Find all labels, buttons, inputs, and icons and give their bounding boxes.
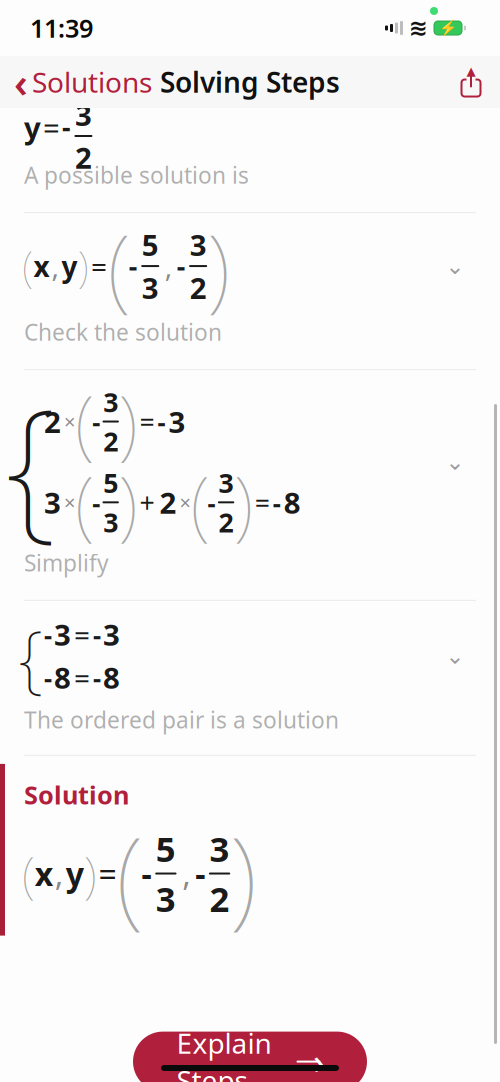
staticText: Explain Steps xyxy=(176,1024,271,1082)
staticText: x xyxy=(35,852,53,895)
staticText: 3 xyxy=(219,465,234,500)
staticText: 11:39 xyxy=(30,11,93,45)
staticText: ) xyxy=(207,206,230,326)
staticText: , xyxy=(55,852,64,895)
staticText: 3 xyxy=(190,225,207,264)
button[interactable]: Explain Steps xyxy=(133,1032,367,1082)
staticText: 3 xyxy=(156,876,176,922)
staticText: { xyxy=(18,607,43,704)
staticText: - xyxy=(44,617,52,651)
staticText: - xyxy=(92,405,100,438)
staticText: - xyxy=(44,660,52,694)
staticText: 3 xyxy=(168,402,185,441)
staticText: 8 xyxy=(284,483,301,522)
staticText: 5 xyxy=(156,825,176,871)
staticText: 3 xyxy=(75,95,92,134)
staticText: - xyxy=(141,852,151,895)
staticText: - xyxy=(273,485,281,519)
staticText: 5 xyxy=(103,465,118,500)
button[interactable]: ‹ xyxy=(0,47,166,116)
staticText: y xyxy=(66,852,84,895)
staticText: ( xyxy=(116,802,144,945)
staticText: › xyxy=(313,1038,324,1082)
button[interactable]: Share xyxy=(442,61,500,103)
staticText: Solution xyxy=(24,778,129,811)
staticText: 3 xyxy=(210,825,230,871)
staticText: × xyxy=(64,408,75,435)
staticText: = xyxy=(255,485,270,520)
staticText: ) xyxy=(78,238,89,294)
staticText: 5 xyxy=(142,225,159,264)
staticText: Solutions xyxy=(32,63,152,101)
staticText: 2 xyxy=(210,876,230,922)
staticText: - xyxy=(93,660,101,694)
staticText: ) xyxy=(229,802,257,945)
staticText: Solving Steps xyxy=(160,63,340,101)
staticText: ‹ xyxy=(14,55,28,108)
staticText: ( xyxy=(22,238,33,294)
staticText: ⌄ xyxy=(445,643,464,669)
button[interactable]: Expand step xyxy=(434,441,476,483)
staticText: 3 xyxy=(103,615,120,654)
staticText: 2 xyxy=(44,402,61,441)
staticText: ( xyxy=(190,452,209,553)
staticText: ⌄ xyxy=(445,449,464,475)
staticText: - xyxy=(177,248,186,284)
staticText: ⌄ xyxy=(445,253,464,279)
staticText: Check the solution xyxy=(24,317,222,347)
staticText: ( xyxy=(22,840,35,907)
staticText: 3 xyxy=(44,483,61,522)
staticText: + xyxy=(139,485,154,520)
staticText: ) xyxy=(84,840,97,907)
staticText: , xyxy=(165,247,173,285)
staticText: ⚡ xyxy=(439,20,457,36)
button[interactable]: Expand step xyxy=(434,245,476,287)
staticText: A possible solution is xyxy=(24,160,249,190)
staticText: 8 xyxy=(103,658,120,697)
staticText: 2 xyxy=(219,504,234,540)
staticText: ▲ xyxy=(466,64,475,78)
staticText: 3 xyxy=(103,504,118,540)
staticText: - xyxy=(195,852,205,895)
staticText: 8 xyxy=(54,658,71,697)
button[interactable]: Expand step xyxy=(434,635,476,677)
staticText: x xyxy=(33,247,49,285)
staticText: - xyxy=(157,405,165,438)
staticText: ( xyxy=(75,371,94,472)
staticText: { xyxy=(5,360,57,564)
staticText: = xyxy=(139,404,154,439)
staticText: 3 xyxy=(54,615,71,654)
staticText: ( xyxy=(107,206,130,326)
staticText: × xyxy=(179,489,190,516)
staticText: - xyxy=(208,485,216,519)
staticText: ) xyxy=(118,371,137,472)
staticText: 2 xyxy=(103,423,118,459)
staticText: - xyxy=(129,248,138,284)
staticText: 3 xyxy=(142,268,159,307)
staticText: = xyxy=(91,247,107,285)
staticText: ( xyxy=(75,452,94,553)
staticText: × xyxy=(64,489,75,516)
staticText: ) xyxy=(118,452,137,553)
staticText: ≋ xyxy=(409,15,428,41)
staticText: = xyxy=(74,616,90,653)
staticText: , xyxy=(182,852,191,895)
staticText: 2 xyxy=(159,483,176,522)
staticText: = xyxy=(74,659,90,696)
staticText: = xyxy=(43,107,60,146)
staticText: , xyxy=(51,247,59,285)
staticText: 2 xyxy=(75,138,92,177)
staticText: y xyxy=(61,247,77,285)
staticText: - xyxy=(62,109,71,145)
staticText: 2 xyxy=(190,268,207,307)
staticText: 3 xyxy=(103,384,118,419)
staticText: ) xyxy=(234,452,253,553)
staticText: - xyxy=(92,485,100,519)
staticText: = xyxy=(99,852,117,895)
staticText: y xyxy=(24,107,41,146)
staticText: - xyxy=(93,617,101,651)
staticText: Simplify xyxy=(24,548,109,578)
staticText: The ordered pair is a solution xyxy=(24,705,339,735)
